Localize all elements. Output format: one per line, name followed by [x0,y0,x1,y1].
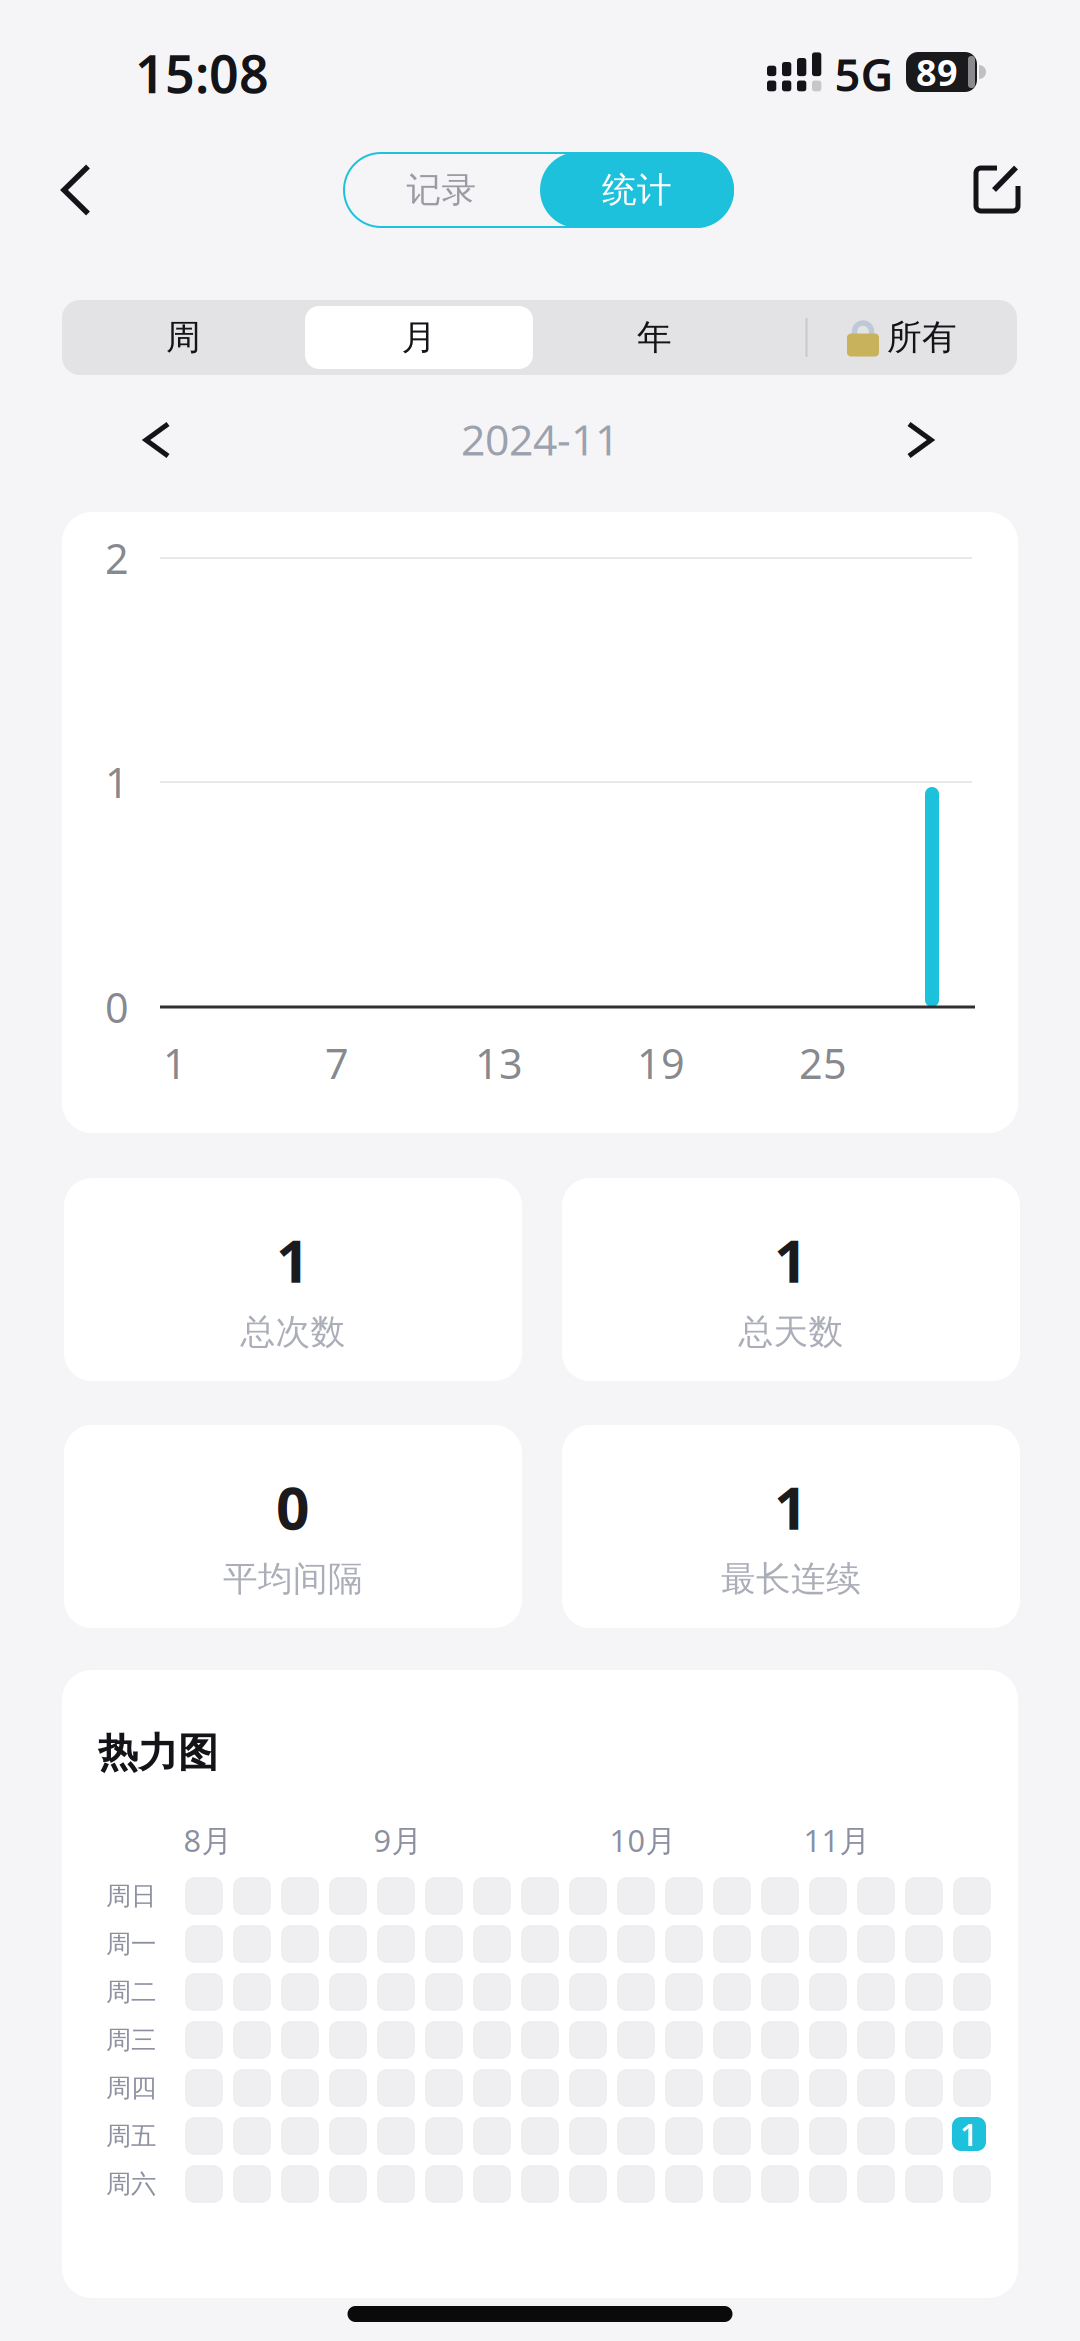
staticText: 平均间隔 [223,1558,363,1600]
staticText: 1 [960,2114,978,2154]
button[interactable]: Previous month [135,418,179,462]
staticText: 10月 [609,1820,676,1860]
staticText: 2024-11 [461,411,619,467]
staticText: 0 [105,980,129,1034]
staticText: 7 [325,1036,349,1090]
button[interactable]: 月 [305,306,533,369]
staticText: 11月 [803,1820,870,1860]
staticText: 统计 [602,169,672,211]
staticText: 89 [916,48,958,96]
staticText: 5G [834,44,893,104]
button[interactable]: 所有 [796,300,1007,375]
staticText: 周二 [106,1976,156,2007]
staticText: 1 [774,1221,808,1299]
staticText: 周三 [106,2024,156,2055]
staticText: 所有 [887,316,957,359]
staticText: 记录 [406,169,476,211]
staticText: 总次数 [240,1311,345,1353]
button[interactable]: 记录 [343,152,540,228]
staticText: 25 [799,1036,847,1090]
staticText: 年 [637,316,672,359]
staticText: 2 [105,531,129,585]
staticText: 9月 [373,1820,422,1860]
staticText: 周六 [106,2168,156,2199]
staticText: 最长连续 [721,1558,861,1600]
staticText: 15:08 [135,38,269,108]
staticText: 热力图 [98,1728,218,1777]
staticText: 月 [401,316,436,359]
button[interactable]: 周 [62,300,305,375]
staticText: 19 [637,1036,685,1090]
staticText: 周五 [106,2120,156,2151]
button[interactable]: Next month [898,418,942,462]
staticText: 1 [105,755,129,809]
button[interactable]: Back [52,161,100,218]
staticText: 13 [475,1036,523,1090]
staticText: 0 [276,1468,310,1546]
staticText: 总天数 [738,1311,843,1353]
staticText: 周一 [106,1928,156,1959]
button[interactable]: Edit [972,164,1022,214]
button[interactable]: 年 [533,300,776,375]
staticText: 1 [163,1036,187,1090]
staticText: 1 [276,1221,310,1299]
staticText: 1 [774,1468,808,1546]
button[interactable]: 统计 [540,152,734,228]
staticText: 周 [166,316,201,359]
staticText: 8月 [183,1820,232,1860]
staticText: 周四 [106,2072,156,2103]
staticText: 周日 [106,1880,156,1911]
